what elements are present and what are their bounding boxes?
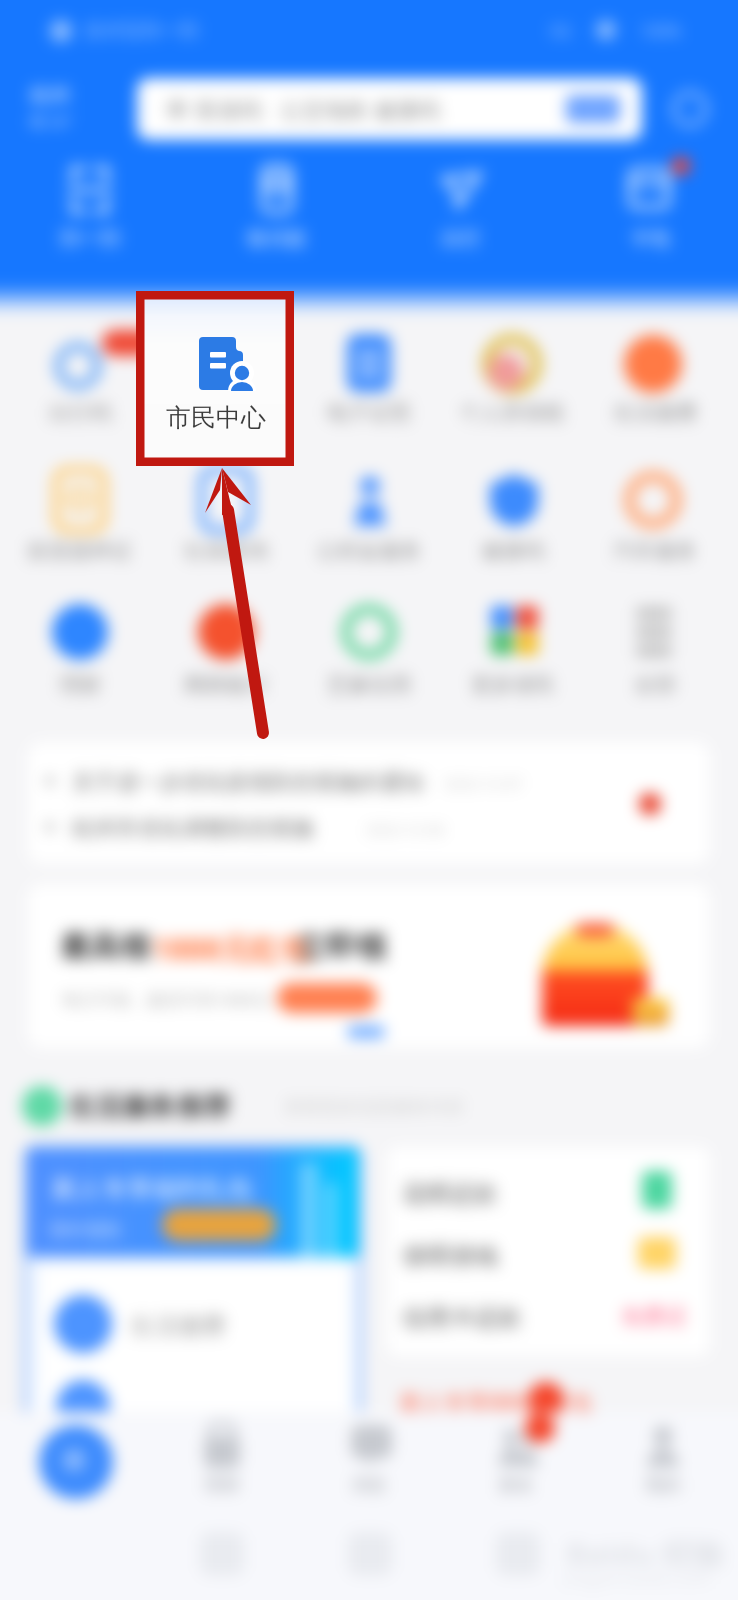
staticText: 卡包 (540, 226, 738, 251)
staticText: 我的 (553, 1474, 738, 1497)
staticText: 网商银行 (116, 672, 336, 698)
staticText: 个人所得税 (402, 400, 622, 426)
staticText: 更多便民 (403, 672, 623, 698)
staticText: 全部 (545, 672, 738, 698)
staticText: 健康码 (403, 538, 623, 564)
staticText: 市民中心 (152, 402, 280, 433)
staticText: 生活缴费 (545, 400, 738, 426)
staticText: 生活缴费 (130, 1311, 226, 1341)
staticText: 5G (550, 20, 571, 42)
staticText: 汽车服务 (545, 538, 738, 564)
staticText: 理财 (0, 672, 190, 698)
staticText: 支付宝扫一扫 (84, 19, 198, 43)
staticText: 消息 (259, 1474, 479, 1497)
staticText: 朋友 (406, 1474, 626, 1497)
staticText: 芝麻信用 (259, 672, 479, 698)
staticText: 公积金服务 (259, 538, 479, 564)
staticText: 出行码 (0, 400, 190, 426)
staticText: 立即领 (296, 928, 386, 966)
staticText: 1888元红包 (152, 928, 311, 969)
staticText: 杭州 (30, 83, 70, 108)
staticText: 借呗借钱 (402, 1241, 498, 1271)
staticText: 新人专享福利礼包 (52, 1173, 252, 1204)
staticText: 杭州市优化调整防控措施 (72, 815, 314, 843)
staticText: 出行 (351, 226, 571, 251)
staticText: 新人专享888元红包 (400, 1386, 592, 1416)
staticText: 社保查询 (116, 538, 336, 564)
staticText: Baidu 经验 (566, 1532, 725, 1574)
staticText: 疫苗接种证 (0, 538, 190, 564)
staticText: 收付款 (167, 226, 387, 251)
staticText: 100% (640, 20, 681, 42)
staticText: 免费还 (621, 1303, 687, 1331)
staticText: 理财 (112, 1474, 332, 1497)
staticText: 关于进一步优化疫情防控措施的通知 (72, 769, 424, 797)
staticText: 电子证照 (259, 400, 479, 426)
staticText: 晴 26° (30, 111, 73, 131)
staticText: 最高领 (60, 928, 150, 966)
staticText: 限时领取 (50, 1219, 122, 1242)
staticText: 信用卡还款 (402, 1303, 522, 1333)
button[interactable]: 市民中心 (140, 295, 291, 462)
staticText: 每日可领，最高可得1888元 (62, 988, 271, 1011)
staticText: 公交地铁 (280, 97, 368, 125)
staticText: 生活服务推荐 (68, 1090, 230, 1124)
staticText: 扫一扫 (0, 226, 200, 251)
staticText: 花呗还款 (402, 1179, 498, 1209)
staticText: 医保码 (196, 97, 262, 125)
staticText: 健康码 (374, 97, 440, 125)
